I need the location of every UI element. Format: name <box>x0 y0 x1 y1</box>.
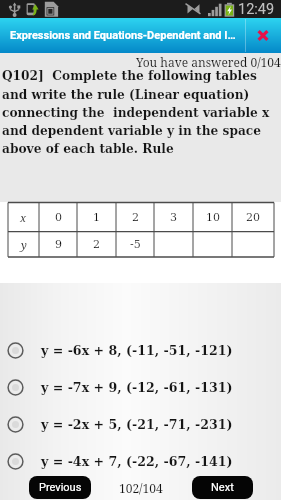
button[interactable]: y = -2x + 5, (-21, -71, -231) <box>0 406 281 443</box>
staticText: -5 <box>130 238 141 251</box>
button[interactable]: y = -6x + 8, (-11, -51, -121) <box>0 332 281 369</box>
staticText: y = -7x + 9, (-12, -61, -131) <box>41 380 233 395</box>
staticText: 1 <box>93 211 100 224</box>
staticText: 3 <box>170 211 177 224</box>
staticText: 0 <box>55 211 62 224</box>
staticText: You have answered 0/104 <box>136 54 281 70</box>
staticText: Q102] Complete the following tables and … <box>2 69 280 156</box>
staticText: 2 <box>132 211 139 224</box>
staticText: 12:49 <box>238 1 275 18</box>
staticText: y = -2x + 5, (-21, -71, -231) <box>41 417 233 432</box>
button[interactable]: y = -4x + 7, (-22, -67, -141) <box>0 443 281 480</box>
button[interactable]: Close <box>245 18 281 53</box>
staticText: Next <box>211 481 234 494</box>
staticText: y = -6x + 8, (-11, -51, -121) <box>41 343 233 358</box>
staticText: y = -4x + 7, (-22, -67, -141) <box>41 454 233 469</box>
staticText: 9 <box>55 238 62 251</box>
button[interactable]: Previous <box>29 476 91 499</box>
staticText: 2 <box>93 238 100 251</box>
staticText: 20 <box>246 211 260 224</box>
button[interactable]: Next <box>192 476 253 499</box>
staticText: x <box>20 210 27 225</box>
staticText: Previous <box>39 481 82 494</box>
staticText: Expressions and Equations-Dependent and … <box>10 29 236 42</box>
staticText: y <box>21 237 27 252</box>
button[interactable]: y = -7x + 9, (-12, -61, -131) <box>0 369 281 406</box>
staticText: 102/104 <box>119 480 163 496</box>
staticText: 10 <box>206 211 220 224</box>
